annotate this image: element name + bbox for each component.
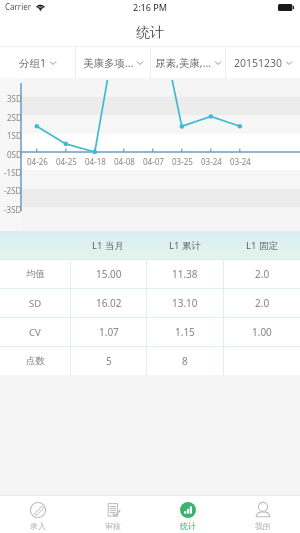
button[interactable]: Review <box>75 496 150 533</box>
button[interactable]: Statistics <box>150 496 225 533</box>
button[interactable]: 15.00 <box>71 260 146 288</box>
staticText: -1SD <box>4 167 22 178</box>
staticText: 3SD <box>7 93 22 104</box>
staticText: 2:16 PM <box>133 1 167 13</box>
button[interactable]: L1 固定 <box>223 231 300 259</box>
staticText: L1 固定 <box>246 239 278 252</box>
staticText: CV <box>29 326 41 339</box>
button[interactable]: 点数 <box>0 347 70 375</box>
staticText: 分组1 <box>19 56 47 70</box>
button[interactable]: 13.10 <box>147 289 223 317</box>
staticText: 04-18 <box>85 156 106 167</box>
staticText: 04-07 <box>143 156 164 167</box>
staticText: SD <box>29 297 42 310</box>
button[interactable]: 均值 <box>0 260 70 288</box>
staticText: 03-24 <box>201 156 222 167</box>
button[interactable]: SD <box>0 289 70 317</box>
staticText: 13.10 <box>172 296 198 310</box>
staticText: 1.07 <box>99 325 119 339</box>
staticText: 1.15 <box>175 325 195 339</box>
button[interactable]: 8 <box>147 347 223 375</box>
button[interactable]: 1.07 <box>71 318 146 346</box>
button[interactable]: 20151230 <box>226 47 300 78</box>
staticText: 2.0 <box>255 296 270 310</box>
button[interactable]: 2.0 <box>224 260 300 288</box>
staticText: 0SD <box>7 149 22 160</box>
button[interactable]: 分组1 <box>0 47 75 78</box>
button[interactable]: Profile <box>225 496 300 533</box>
staticText: 15.00 <box>96 267 122 281</box>
staticText: -3SD <box>4 204 22 215</box>
staticText: 5 <box>106 354 112 368</box>
staticText: 16.02 <box>96 296 122 310</box>
staticText: 04-26 <box>27 156 48 167</box>
button[interactable]: L1 当月 <box>70 231 146 259</box>
staticText: 2.0 <box>255 267 270 281</box>
staticText: 统计 <box>180 521 196 531</box>
staticText: 录入 <box>30 521 46 531</box>
staticText: L1 累计 <box>169 239 201 252</box>
staticText: 尿素,美康,... <box>155 56 212 70</box>
button[interactable]: 2.0 <box>224 289 300 317</box>
button[interactable]: 11.38 <box>147 260 223 288</box>
staticText: 美康多项... <box>83 56 134 70</box>
button[interactable]: Data entry <box>0 496 75 533</box>
staticText: 04-25 <box>56 156 77 167</box>
button[interactable]: CV <box>0 318 70 346</box>
staticText: 审核 <box>105 521 121 531</box>
button[interactable]: 尿素,美康,... <box>151 47 225 78</box>
staticText: 03-25 <box>172 156 193 167</box>
staticText: 03-24 <box>230 156 251 167</box>
staticText: 均值 <box>26 268 45 280</box>
button[interactable]: 美康多项... <box>76 47 150 78</box>
staticText: 11.38 <box>172 267 198 281</box>
staticText: Carrier <box>5 1 32 12</box>
button[interactable]: 5 <box>71 347 146 375</box>
staticText: 2SD <box>7 112 22 123</box>
button[interactable]: 16.02 <box>71 289 146 317</box>
button[interactable]: 1.15 <box>147 318 223 346</box>
button[interactable]: 1.00 <box>224 318 300 346</box>
staticText: L1 当月 <box>92 239 124 252</box>
staticText: 1SD <box>7 130 22 141</box>
button[interactable]: L1 累计 <box>146 231 223 259</box>
staticText: 1.00 <box>252 325 272 339</box>
staticText: 点数 <box>26 355 45 367</box>
staticText: 20151230 <box>234 56 283 70</box>
staticText: 统计 <box>136 24 164 42</box>
staticText: -2SD <box>4 185 22 196</box>
staticText: 8 <box>182 354 188 368</box>
staticText: 04-08 <box>114 156 135 167</box>
staticText: 我的 <box>255 521 271 531</box>
